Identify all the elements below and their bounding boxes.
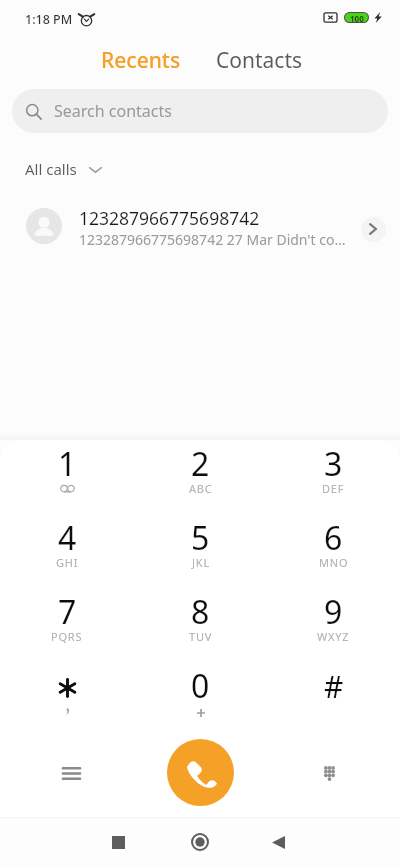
staticText: TUV bbox=[189, 629, 213, 644]
button[interactable]: 3 bbox=[267, 440, 400, 514]
button[interactable]: 7 bbox=[0, 588, 134, 662]
staticText: 6 bbox=[324, 516, 343, 560]
button[interactable]: 6 bbox=[267, 514, 400, 588]
staticText: 100 bbox=[350, 13, 364, 22]
button[interactable]: Contacts bbox=[200, 39, 319, 82]
button[interactable]: Recent apps bbox=[96, 820, 140, 864]
button[interactable]: 2 bbox=[134, 440, 267, 514]
staticText: 9 bbox=[324, 590, 343, 634]
staticText: Recents bbox=[101, 46, 181, 75]
staticText: PQRS bbox=[51, 629, 83, 644]
button[interactable]: Search contacts bbox=[12, 89, 388, 133]
staticText: 123287966775698742 bbox=[79, 206, 260, 230]
button[interactable]: 123287966775698742 bbox=[0, 195, 400, 257]
staticText: 123287966775698742 27 Mar Didn't co… bbox=[79, 230, 346, 249]
button[interactable]: Call log bbox=[47, 749, 95, 797]
staticText: JKL bbox=[192, 555, 210, 570]
button[interactable]: Call details bbox=[353, 209, 393, 249]
button[interactable] bbox=[0, 662, 134, 736]
staticText: ABC bbox=[189, 481, 213, 496]
staticText: 2 bbox=[191, 442, 210, 486]
button[interactable]: Back bbox=[256, 820, 300, 864]
staticText: 3 bbox=[324, 442, 343, 486]
staticText: WXYZ bbox=[317, 629, 350, 644]
staticText: Search contacts bbox=[54, 100, 172, 122]
staticText: 1:18 PM bbox=[25, 11, 73, 28]
button[interactable]: 0 bbox=[134, 662, 267, 736]
staticText: DEF bbox=[322, 481, 345, 496]
button[interactable]: Home bbox=[178, 820, 222, 864]
staticText: 1 bbox=[58, 442, 77, 486]
staticText: 0 bbox=[191, 664, 210, 708]
staticText: Contacts bbox=[216, 46, 303, 75]
button[interactable]: Call bbox=[167, 739, 234, 806]
staticText: GHI bbox=[56, 555, 79, 570]
button[interactable]: 5 bbox=[134, 514, 267, 588]
staticText: MNO bbox=[319, 555, 349, 570]
staticText: 5 bbox=[191, 516, 210, 560]
button[interactable]: 1 bbox=[0, 440, 134, 514]
staticText: # bbox=[324, 666, 344, 707]
button[interactable]: # bbox=[267, 662, 400, 736]
button[interactable]: All calls bbox=[19, 155, 109, 183]
staticText: 8 bbox=[191, 590, 210, 634]
button[interactable]: 4 bbox=[0, 514, 134, 588]
staticText: 7 bbox=[58, 590, 77, 634]
button[interactable]: Dialpad bbox=[305, 749, 353, 797]
button[interactable]: 8 bbox=[134, 588, 267, 662]
staticText: All calls bbox=[25, 159, 77, 179]
staticText: 4 bbox=[58, 516, 77, 560]
button[interactable]: Recents bbox=[85, 39, 197, 82]
button[interactable]: 9 bbox=[267, 588, 400, 662]
